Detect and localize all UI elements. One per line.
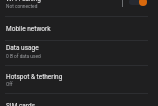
- button[interactable]: [0, 41, 158, 65]
- staticText: Hotspot & tethering: [6, 73, 63, 81]
- staticText: Mobile network: [6, 25, 51, 33]
- staticText: 0 B of data used: [6, 54, 41, 60]
- staticText: Wi-Fi calling: [6, 0, 41, 3]
- button[interactable]: [0, 66, 158, 93]
- staticText: SIM cards: [6, 102, 36, 106]
- staticText: Off: [6, 82, 13, 88]
- staticText: Not connected: [6, 4, 38, 10]
- button[interactable]: [0, 0, 158, 16]
- other: Wi-Fi toggle: [139, 0, 147, 6]
- button[interactable]: [0, 17, 158, 40]
- button[interactable]: [0, 94, 158, 106]
- staticText: Data usage: [6, 44, 39, 52]
